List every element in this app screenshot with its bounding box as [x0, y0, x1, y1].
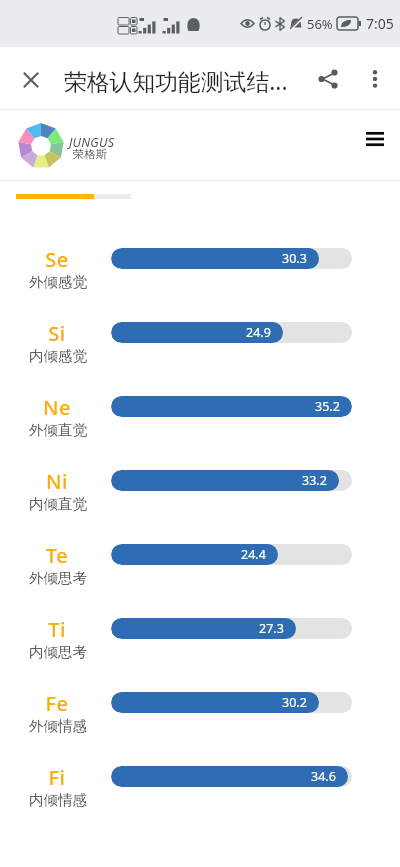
button[interactable]: Ti: [0, 600, 400, 658]
staticText: 7:05: [366, 14, 394, 33]
staticText: 30.3: [282, 250, 307, 267]
staticText: Fi: [20, 764, 94, 791]
button[interactable]: Si: [0, 304, 400, 362]
staticText: 27.3: [259, 620, 284, 637]
button[interactable]: Se: [0, 230, 400, 288]
staticText: 外倾情感: [21, 717, 95, 735]
staticText: 34.6: [311, 768, 336, 785]
button[interactable]: Fe: [0, 674, 400, 732]
button[interactable]: Ne: [0, 378, 400, 436]
staticText: Ti: [20, 616, 94, 643]
staticText: 外倾思考: [21, 569, 95, 587]
button[interactable]: Fi: [0, 748, 400, 806]
staticText: 24.9: [246, 324, 271, 341]
button[interactable]: Close: [7, 56, 55, 104]
staticText: 外倾直觉: [21, 421, 95, 439]
staticText: 33.2: [302, 472, 327, 489]
staticText: 内倾情感: [21, 791, 95, 809]
staticText: 荣格认知功能测试结...: [64, 66, 288, 97]
staticText: Se: [20, 246, 94, 273]
staticText: 30.2: [282, 694, 307, 711]
button[interactable]: Share: [304, 55, 352, 103]
button[interactable]: Ni: [0, 452, 400, 510]
staticText: 内倾思考: [21, 643, 95, 661]
staticText: JUNGUS: [69, 134, 115, 151]
staticText: 内倾感觉: [21, 347, 95, 365]
staticText: Fe: [20, 690, 94, 717]
staticText: 内倾直觉: [21, 495, 95, 513]
button[interactable]: Menu: [352, 116, 398, 162]
button[interactable]: More options: [351, 55, 399, 103]
staticText: Ni: [20, 468, 94, 495]
staticText: 24.4: [241, 546, 266, 563]
staticText: 外倾感觉: [21, 273, 95, 291]
staticText: Ne: [20, 394, 94, 421]
staticText: 荣格斯: [73, 147, 107, 161]
staticText: Si: [20, 320, 94, 347]
staticText: Te: [20, 542, 94, 569]
staticText: 35.2: [315, 398, 340, 415]
staticText: 56%: [307, 15, 333, 33]
button[interactable]: Te: [0, 526, 400, 584]
